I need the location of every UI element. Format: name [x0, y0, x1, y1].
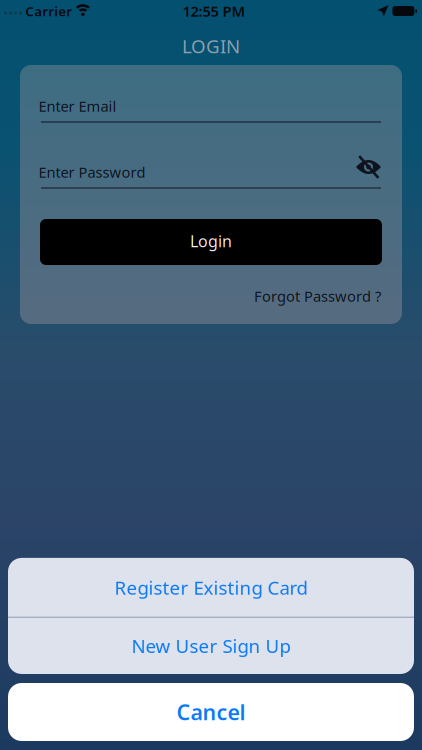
- staticText: Cancel: [176, 698, 245, 726]
- staticText: 12:55 PM: [182, 1, 245, 21]
- button[interactable]: New User Sign Up: [8, 618, 414, 674]
- staticText: Carrier: [25, 2, 72, 20]
- button[interactable]: Cancel: [8, 683, 414, 741]
- button[interactable]: Enter Email: [41, 96, 381, 122]
- button[interactable]: Register Existing Card: [8, 558, 414, 617]
- staticText: Enter Email: [38, 96, 116, 116]
- button[interactable]: [356, 155, 381, 178]
- staticText: Enter Password: [38, 162, 145, 182]
- staticText: Forgot Password ?: [254, 286, 381, 306]
- button[interactable]: Forgot Password ?: [254, 286, 381, 306]
- staticText: LOGIN: [182, 34, 240, 58]
- staticText: Register Existing Card: [114, 575, 307, 600]
- button[interactable]: Enter Password: [41, 160, 381, 188]
- staticText: New User Sign Up: [131, 633, 290, 658]
- button[interactable]: Login: [41, 219, 381, 265]
- staticText: Login: [190, 230, 232, 252]
